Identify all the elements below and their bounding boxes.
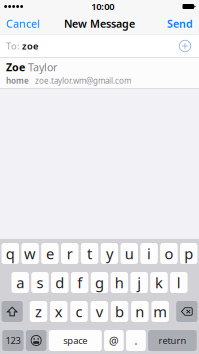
staticText: return xyxy=(158,334,186,347)
staticText: zoe xyxy=(22,40,38,52)
button[interactable]: e xyxy=(41,243,59,264)
staticText: e xyxy=(46,244,54,263)
staticText: w xyxy=(24,244,36,263)
staticText: 123 xyxy=(5,334,20,347)
button[interactable]: l xyxy=(170,272,188,293)
button[interactable]: k xyxy=(150,272,168,293)
button[interactable]: p xyxy=(180,243,197,264)
staticText: c xyxy=(75,302,82,321)
staticText: r xyxy=(67,244,73,263)
staticText: h xyxy=(115,273,124,292)
staticText: q xyxy=(6,244,15,263)
staticText: @ xyxy=(109,333,119,348)
staticText: . xyxy=(134,333,137,348)
staticText: j xyxy=(137,273,141,292)
button[interactable]: Cancel xyxy=(0,13,46,34)
button[interactable]: u xyxy=(120,243,138,264)
button[interactable]: i xyxy=(140,243,158,264)
button[interactable]: q xyxy=(1,243,19,264)
button[interactable]: return xyxy=(148,330,197,351)
button[interactable]: b xyxy=(111,301,128,322)
button[interactable]: c xyxy=(70,301,88,322)
staticText: Taylor xyxy=(28,60,57,74)
staticText: a xyxy=(16,273,24,292)
button[interactable]: f xyxy=(71,272,88,293)
button[interactable]: z xyxy=(30,301,47,322)
staticText: home xyxy=(6,75,29,86)
staticText: Send xyxy=(167,16,193,31)
button[interactable]: n xyxy=(131,301,149,322)
button[interactable]: d xyxy=(51,272,69,293)
staticText: To: xyxy=(6,40,22,52)
staticText: t xyxy=(87,244,92,263)
button[interactable]: h xyxy=(111,272,128,293)
staticText: Zoe xyxy=(6,60,28,74)
staticText: k xyxy=(155,273,163,292)
button[interactable]: @ xyxy=(104,330,124,351)
staticText: f xyxy=(77,273,82,292)
button[interactable]: Send xyxy=(161,13,199,34)
staticText: New Message xyxy=(64,16,135,31)
button[interactable]: Delete xyxy=(176,301,197,322)
button[interactable]: y xyxy=(101,243,118,264)
staticText: o xyxy=(164,244,173,263)
button[interactable]: s xyxy=(31,272,49,293)
staticText: v xyxy=(96,302,103,321)
staticText: d xyxy=(55,273,64,292)
staticText: y xyxy=(106,244,113,263)
button[interactable]: r xyxy=(61,243,78,264)
button[interactable]: v xyxy=(90,301,108,322)
button[interactable]: w xyxy=(21,243,39,264)
staticText: z xyxy=(35,302,42,321)
staticText: 10:00 xyxy=(91,0,114,13)
staticText: i xyxy=(147,244,151,263)
staticText: space xyxy=(63,334,87,347)
button[interactable]: g xyxy=(91,272,108,293)
staticText: n xyxy=(135,302,144,321)
staticText: Cancel xyxy=(6,16,40,31)
button[interactable]: j xyxy=(130,272,148,293)
staticText: zoe.taylor.wm@gmail.com xyxy=(29,75,131,86)
button[interactable]: Shift xyxy=(1,301,23,322)
button[interactable]: m xyxy=(151,301,169,322)
button[interactable]: 123 xyxy=(2,330,24,351)
staticText: l xyxy=(177,273,181,292)
button[interactable]: t xyxy=(81,243,98,264)
staticText: u xyxy=(125,244,134,263)
button[interactable]: Add contact xyxy=(175,35,195,57)
button[interactable]: a xyxy=(11,272,29,293)
button[interactable]: x xyxy=(50,301,67,322)
button[interactable]: o xyxy=(160,243,178,264)
staticText: g xyxy=(95,273,104,292)
button[interactable]: space xyxy=(49,330,102,351)
button[interactable]: Emoji xyxy=(26,330,46,351)
staticText: s xyxy=(36,273,43,292)
staticText: m xyxy=(153,302,167,321)
staticText: x xyxy=(55,302,63,321)
staticText: b xyxy=(115,302,124,321)
button[interactable]: Zoe xyxy=(0,58,199,88)
button[interactable]: . xyxy=(126,330,146,351)
staticText: p xyxy=(184,244,193,263)
